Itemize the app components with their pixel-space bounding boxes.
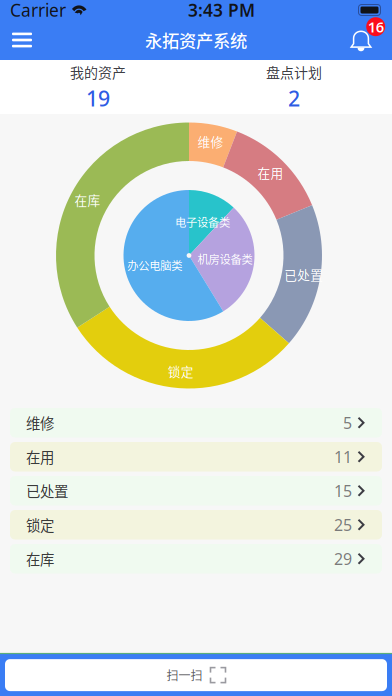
staticText: 19 — [86, 84, 110, 112]
staticText: 5 — [343, 412, 352, 433]
staticText: 在用 — [258, 163, 284, 182]
button[interactable]: 盘点计划 — [196, 60, 392, 114]
button[interactable]: 锁定 — [10, 510, 382, 539]
button[interactable]: 维修 — [10, 408, 382, 437]
staticText: 已处置 — [26, 480, 68, 501]
staticText: 2 — [288, 84, 300, 112]
staticText: 办公电脑类 — [127, 257, 182, 273]
button[interactable]: 已处置 — [10, 476, 382, 505]
staticText: 在用 — [26, 446, 54, 467]
staticText: 盘点计划 — [266, 62, 322, 82]
staticText: 3:43 PM — [188, 0, 255, 21]
button[interactable]: Notifications — [348, 20, 392, 60]
staticText: 扫一扫 — [166, 666, 202, 684]
staticText: 电子设备类 — [175, 214, 230, 230]
staticText: 在库 — [26, 548, 54, 569]
button[interactable]: Menu — [0, 20, 44, 60]
staticText: 11 — [334, 446, 352, 467]
staticText: 机房设备类 — [198, 251, 253, 267]
staticText: Carrier — [10, 0, 66, 21]
staticText: 我的资产 — [70, 62, 126, 82]
staticText: 29 — [334, 548, 352, 569]
staticText: 已处置 — [284, 265, 323, 284]
button[interactable]: 我的资产 — [0, 60, 196, 114]
staticText: 永拓资产系统 — [145, 27, 247, 53]
staticText: 锁定 — [168, 362, 194, 380]
staticText: 25 — [334, 514, 352, 535]
staticText: 15 — [334, 480, 352, 501]
button[interactable]: 在库 — [10, 544, 382, 573]
staticText: 16 — [368, 17, 384, 36]
staticText: 锁定 — [26, 514, 54, 535]
button[interactable]: 在用 — [10, 442, 382, 471]
button[interactable]: 扫一扫 — [5, 659, 387, 691]
staticText: 在库 — [74, 191, 100, 209]
staticText: 维修 — [198, 132, 224, 150]
staticText: 维修 — [26, 412, 54, 433]
